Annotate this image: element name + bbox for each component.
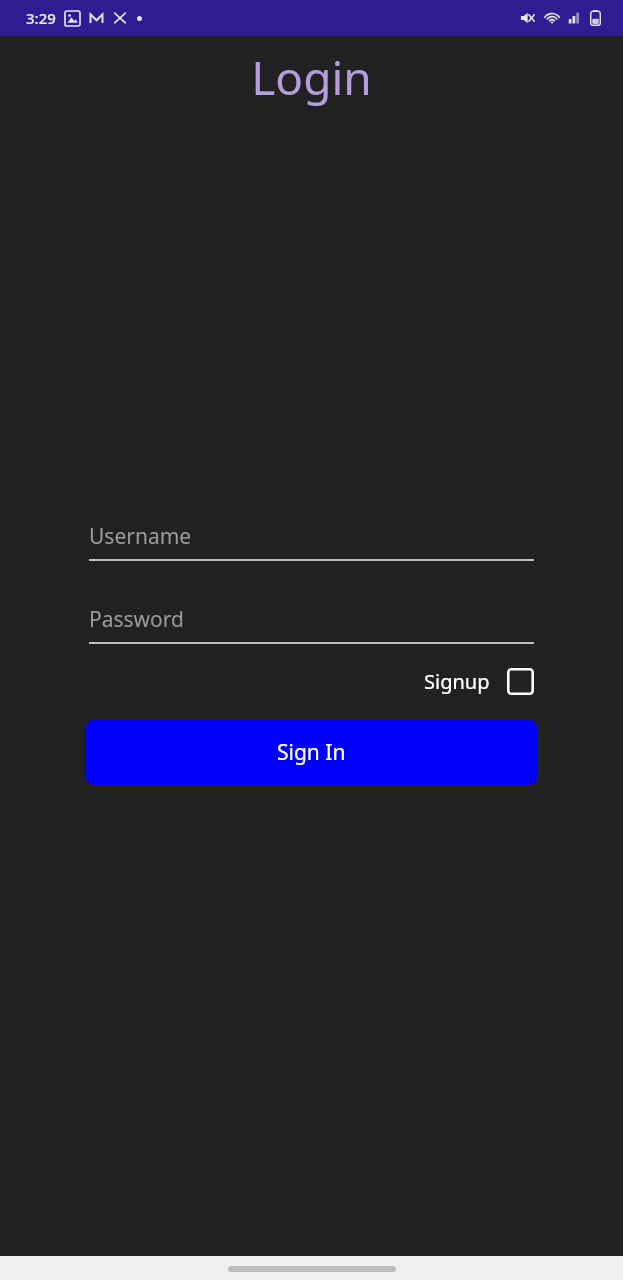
staticText: 3:29 [26,8,56,28]
staticText: Signup [424,668,490,695]
staticText: Password [89,605,184,634]
button[interactable]: Sign In [85,720,538,785]
button[interactable]: Username [89,522,534,561]
other: Signup checkbox [507,668,534,695]
staticText: Login [0,46,623,109]
staticText: Sign In [277,738,346,767]
button[interactable]: Signup [420,664,538,699]
staticText: Username [89,522,192,551]
button[interactable]: Password [89,605,534,644]
